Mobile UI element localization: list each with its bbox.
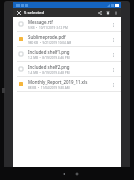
staticText: 5 selected: [24, 10, 45, 16]
button[interactable]: More options: [112, 9, 119, 16]
staticText: Message.rtf: [28, 19, 53, 25]
button[interactable]: Item options: [109, 65, 118, 74]
button[interactable]: Select: [13, 47, 121, 61]
staticText: Included shelf2.png: [28, 64, 70, 70]
button[interactable]: Deselect: [13, 77, 121, 91]
button[interactable]: Back: [61, 171, 66, 176]
button[interactable]: Close selection: [15, 9, 22, 16]
button[interactable]: Item options: [109, 20, 118, 29]
button[interactable]: Deselect: [13, 32, 121, 46]
button[interactable]: Home: [74, 171, 79, 176]
staticText: 1.4 MB • 8/19/2019 4:48 PM: [28, 71, 70, 75]
button[interactable]: Share: [96, 9, 103, 16]
button[interactable]: Item options: [109, 50, 118, 59]
staticText: 1.2 MB • 8/19/2019 4:46 PM: [28, 56, 70, 60]
button[interactable]: Deselect: [17, 80, 25, 88]
button[interactable]: Select: [13, 62, 121, 76]
staticText: 88 KB • 11/04/2019 9:30 AM: [28, 86, 70, 90]
button[interactable]: Item options: [109, 80, 118, 89]
button[interactable]: Select: [13, 17, 121, 31]
button[interactable]: Delete: [104, 9, 111, 16]
staticText: Sublimeprode.pdf: [28, 34, 66, 40]
button[interactable]: Select: [17, 50, 25, 58]
button[interactable]: Item options: [109, 35, 118, 44]
staticText: Monthly_Report_2019_11.xls: [28, 79, 88, 85]
staticText: Included shelf1.png: [28, 49, 70, 55]
button[interactable]: Select: [17, 20, 25, 28]
button[interactable]: Deselect: [17, 35, 25, 43]
staticText: 980 KB • 9/21/2019 10:04 AM: [28, 41, 72, 45]
staticText: 5 KB • 10/11/2019 3:12 PM: [28, 26, 68, 30]
button[interactable]: Select: [17, 65, 25, 73]
